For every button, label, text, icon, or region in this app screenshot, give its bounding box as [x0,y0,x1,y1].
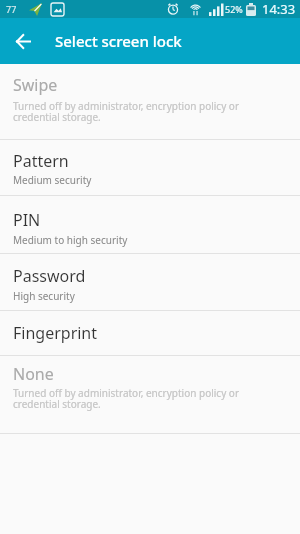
button[interactable]: Swipe [0,64,300,139]
staticText: 77 [6,3,17,15]
staticText: None [13,363,54,385]
staticText: Pattern [13,150,69,172]
staticText: 14:33 [262,0,296,18]
button[interactable]: Fingerprint [0,311,300,355]
staticText: Password [13,265,86,287]
button[interactable]: Pattern [0,140,300,195]
staticText: Select screen lock [55,31,182,51]
button[interactable] [0,18,46,64]
button[interactable]: Password [0,254,300,310]
staticText: 52% [225,3,243,15]
staticText: Turned off by administrator, encryption … [13,386,240,411]
staticText: Swipe [13,74,58,96]
staticText: Turned off by administrator, encryption … [13,99,240,124]
staticText: Medium security [13,173,92,187]
staticText: PIN [13,209,41,231]
button[interactable]: PIN [0,196,300,253]
staticText: Medium to high security [13,233,128,247]
staticText: Fingerprint [13,322,98,344]
button[interactable]: None [0,356,300,433]
staticText: High security [13,289,75,303]
